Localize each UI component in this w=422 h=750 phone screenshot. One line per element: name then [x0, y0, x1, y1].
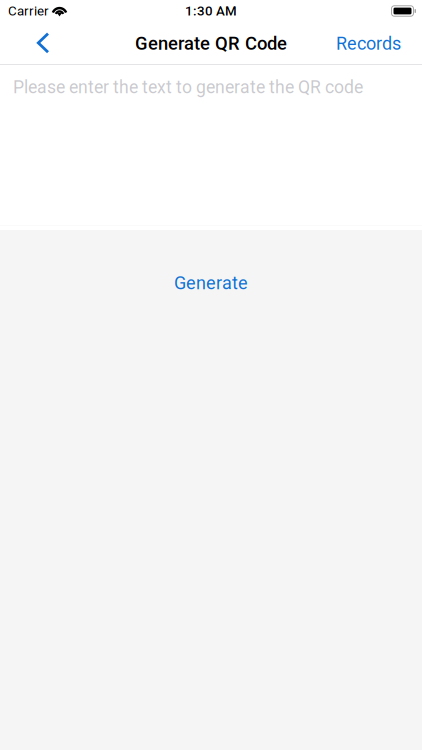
button[interactable]: Back [20, 22, 64, 65]
staticText: 1:30 AM [185, 3, 237, 19]
button[interactable]: Records [326, 22, 411, 65]
button[interactable]: Generate [154, 262, 268, 304]
staticText: Carrier [8, 3, 49, 19]
staticText: Generate QR Code [135, 33, 287, 54]
staticText: Please enter the text to generate the QR… [13, 77, 363, 98]
button[interactable]: Text to encode [0, 65, 422, 230]
staticText: Generate [174, 272, 248, 294]
staticText: Records [336, 33, 401, 54]
